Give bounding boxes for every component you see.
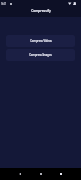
staticText: Compressify (31, 9, 51, 13)
staticText: 9:41 (1, 2, 7, 6)
button[interactable]: Compress Images (6, 49, 75, 61)
staticText: Compress Images (29, 53, 52, 57)
button[interactable]: Home (35, 168, 47, 180)
button[interactable]: Back (14, 168, 26, 180)
staticText: Compress Videos (30, 39, 52, 43)
button[interactable]: Recents (55, 168, 67, 180)
button[interactable]: Compress Videos (6, 35, 75, 47)
